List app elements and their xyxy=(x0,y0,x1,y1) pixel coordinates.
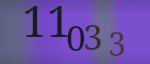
button[interactable]: Numeral display 11 0 3 3 xyxy=(0,0,150,64)
